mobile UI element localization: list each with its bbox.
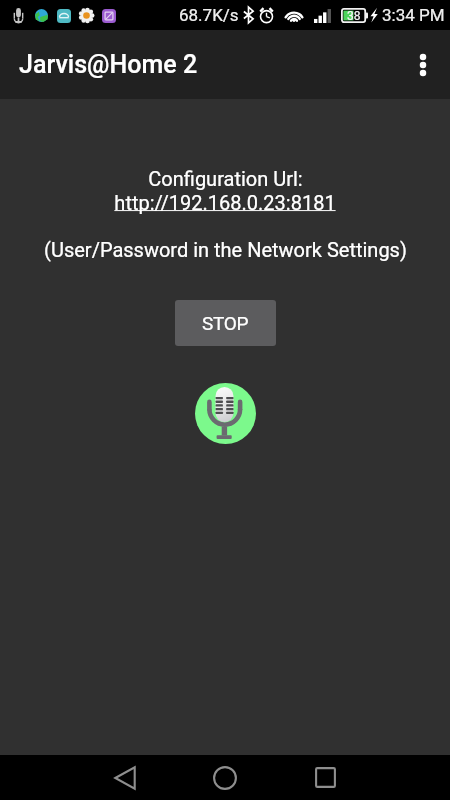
staticText: 3:34 PM [382,5,445,25]
button[interactable]: Microphone [195,383,256,444]
staticText: Configuration Url: [148,167,303,190]
staticText: (User/Password in the Network Settings) [44,238,407,261]
button[interactable]: Back [75,755,175,800]
staticText: Jarvis@Home 2 [19,50,198,79]
staticText: 68.7K/s [179,5,239,25]
staticText: STOP [202,312,249,334]
button[interactable]: STOP [175,300,276,346]
button[interactable]: More options [399,41,447,89]
button[interactable]: Home [175,755,275,800]
button[interactable]: http://192.168.0.23:8181 [114,191,336,214]
staticText: 38 [347,9,361,23]
button[interactable]: Recent apps [275,755,375,800]
